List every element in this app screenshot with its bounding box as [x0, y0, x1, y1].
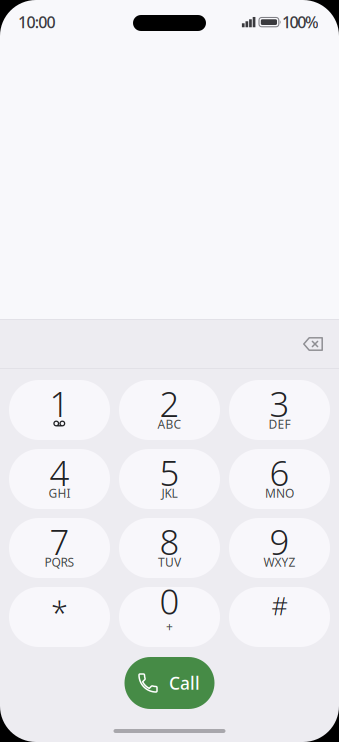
staticText: 2: [159, 380, 179, 426]
staticText: 3: [269, 380, 289, 426]
staticText: 6: [269, 449, 289, 495]
button[interactable]: 1: [9, 380, 110, 440]
staticText: 9: [269, 518, 289, 564]
staticText: 10:00: [18, 11, 56, 33]
staticText: Call: [169, 671, 200, 694]
button[interactable]: *: [9, 587, 110, 647]
button[interactable]: 6: [229, 449, 330, 509]
staticText: *: [51, 591, 68, 632]
staticText: GHI: [48, 485, 70, 501]
button[interactable]: #: [229, 587, 330, 647]
staticText: TUV: [158, 554, 181, 570]
staticText: +: [166, 618, 173, 634]
staticText: 7: [49, 518, 69, 564]
button[interactable]: 5: [119, 449, 220, 509]
button[interactable]: 2: [119, 380, 220, 440]
staticText: 1: [49, 380, 69, 426]
staticText: WXYZ: [263, 554, 295, 570]
button[interactable]: 4: [9, 449, 110, 509]
staticText: MNO: [265, 485, 294, 501]
staticText: 8: [159, 518, 179, 564]
staticText: 4: [49, 449, 69, 495]
staticText: 5: [159, 449, 179, 495]
staticText: PQRS: [44, 554, 74, 570]
button[interactable]: Call: [124, 657, 214, 709]
button[interactable]: 9: [229, 518, 330, 578]
staticText: 100%: [282, 11, 319, 33]
button[interactable]: 7: [9, 518, 110, 578]
button[interactable]: 0: [119, 587, 220, 647]
staticText: DEF: [268, 416, 290, 432]
staticText: 0: [159, 578, 179, 624]
staticText: #: [271, 589, 287, 622]
button[interactable]: 8: [119, 518, 220, 578]
staticText: JKL: [161, 485, 177, 501]
button[interactable]: Backspace: [293, 322, 333, 366]
staticText: ABC: [157, 416, 181, 432]
button[interactable]: 3: [229, 380, 330, 440]
